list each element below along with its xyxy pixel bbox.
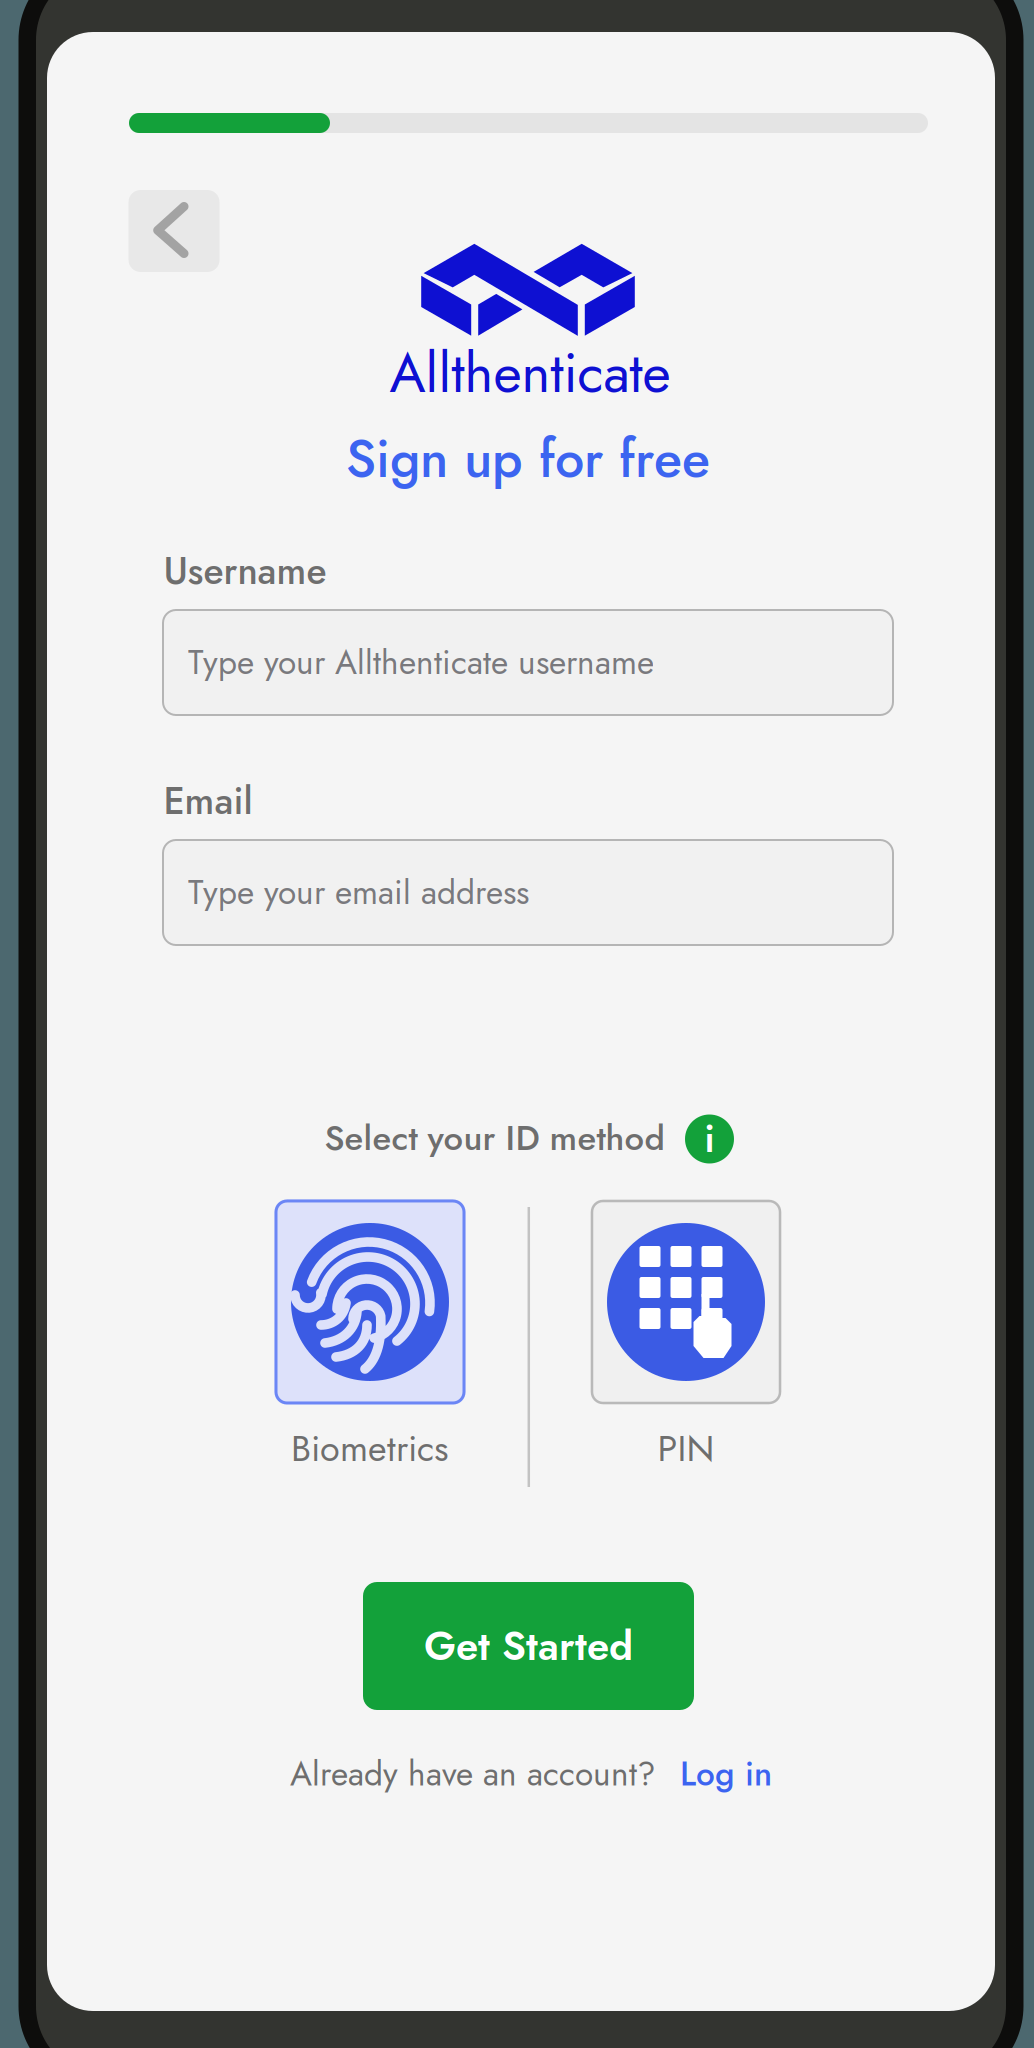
button[interactable]: Get Started [363, 1582, 694, 1710]
staticText: Log in [680, 1750, 772, 1798]
staticText: Email [163, 774, 252, 828]
staticText: Already have an account? [290, 1750, 656, 1798]
staticText: i [704, 1112, 714, 1166]
button[interactable]: Back [128, 190, 219, 272]
staticText: Allthenticate [389, 333, 670, 412]
staticText: Username [163, 544, 326, 598]
staticText: Get Started [424, 1617, 633, 1675]
button[interactable]: Biometrics [274, 1199, 465, 1474]
button[interactable]: PIN [590, 1199, 781, 1474]
staticText: Type your Allthenticate username [188, 638, 654, 687]
staticText: Biometrics [291, 1422, 449, 1474]
staticText: Select your ID method [325, 1113, 665, 1163]
button[interactable]: More information [685, 1114, 734, 1163]
staticText: Sign up for free [346, 421, 710, 496]
staticText: Type your email address [188, 868, 529, 917]
staticText: PIN [657, 1422, 714, 1474]
button[interactable]: Log in [680, 1750, 772, 1798]
